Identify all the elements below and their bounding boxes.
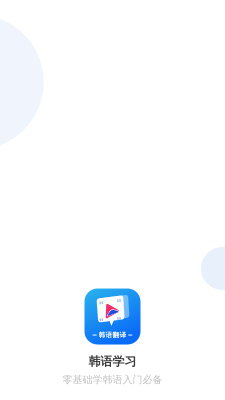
staticText: 零基础学韩语入门必备	[62, 373, 162, 386]
staticText: 韩语翻译	[98, 331, 126, 339]
staticText: 韩语学习	[88, 354, 136, 369]
